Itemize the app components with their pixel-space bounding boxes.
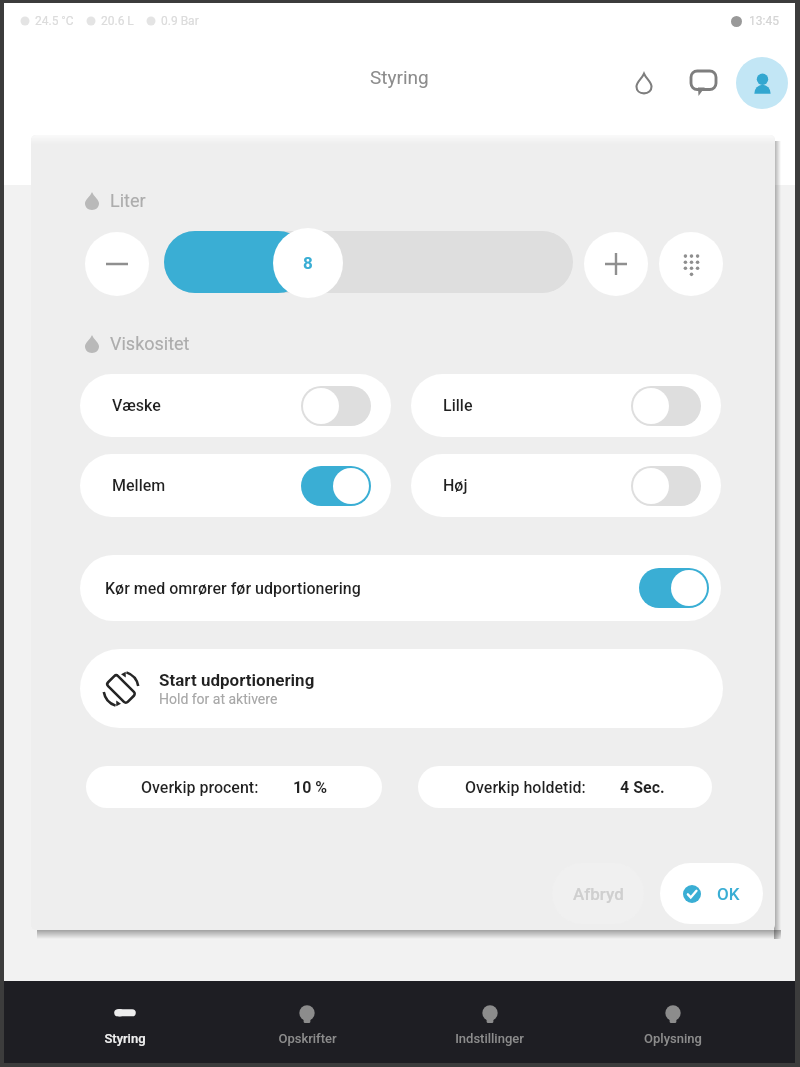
- staticText: 13:45: [749, 14, 779, 28]
- button[interactable]: Oplysning: [581, 981, 764, 1063]
- staticText: Kør med omrører før udportionering: [105, 579, 361, 598]
- staticText: Overkip procent:: [141, 778, 259, 797]
- button[interactable]: Overkip holdetid:: [418, 766, 712, 808]
- button[interactable]: Høj: [411, 454, 721, 517]
- staticText: 0.9 Bar: [161, 14, 199, 28]
- button[interactable]: Overkip procent:: [86, 766, 382, 808]
- button[interactable]: Afbryd: [552, 863, 644, 924]
- button[interactable]: Messages: [678, 58, 728, 108]
- staticText: Oplysning: [644, 1031, 702, 1046]
- staticText: Hold for at aktivere: [159, 691, 278, 707]
- staticText: Styring: [370, 66, 429, 88]
- staticText: Start udportionering: [159, 670, 315, 690]
- staticText: Styring: [104, 1031, 146, 1046]
- staticText: 4 Sec.: [620, 778, 665, 797]
- staticText: Væske: [112, 396, 161, 415]
- staticText: 8: [303, 253, 313, 273]
- staticText: Høj: [443, 476, 468, 495]
- button[interactable]: Start udportionering: [80, 649, 723, 728]
- staticText: 20.6 L: [101, 14, 134, 28]
- button[interactable]: Væske: [80, 374, 391, 437]
- staticText: Overkip holdetid:: [465, 778, 586, 797]
- button[interactable]: Decrease: [85, 232, 149, 296]
- staticText: Opskrifter: [278, 1031, 337, 1046]
- button[interactable]: Keypad: [659, 232, 723, 296]
- button[interactable]: Indstillinger: [398, 981, 581, 1063]
- button[interactable]: Mellem: [80, 454, 391, 517]
- button[interactable]: Lille: [411, 374, 721, 437]
- button[interactable]: Profile: [736, 57, 788, 109]
- staticText: Lille: [443, 396, 473, 415]
- button[interactable]: Kør med omrører før udportionering: [80, 555, 721, 621]
- button[interactable]: Increase: [584, 232, 648, 296]
- button[interactable]: 8: [273, 228, 343, 298]
- staticText: 10 %: [293, 778, 328, 797]
- staticText: 24.5 °C: [35, 14, 74, 28]
- button[interactable]: Opskrifter: [216, 981, 398, 1063]
- staticText: Afbryd: [573, 884, 624, 904]
- staticText: OK: [717, 884, 740, 904]
- button[interactable]: Liquid level: [619, 58, 669, 108]
- staticText: Mellem: [112, 476, 166, 495]
- button[interactable]: Styring: [34, 981, 216, 1063]
- staticText: Viskositet: [110, 333, 190, 354]
- button[interactable]: OK: [660, 863, 763, 924]
- staticText: Liter: [110, 190, 146, 211]
- staticText: Indstillinger: [455, 1031, 524, 1046]
